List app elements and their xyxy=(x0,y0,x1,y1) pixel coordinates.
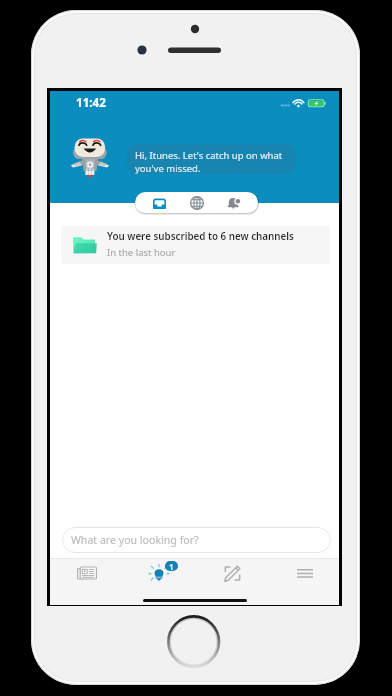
button[interactable]: You were subscribed to 6 new channels xyxy=(61,226,330,264)
button[interactable]: Inbox xyxy=(146,192,173,213)
staticText: What are you looking for? xyxy=(71,533,199,547)
button[interactable]: Menu xyxy=(285,553,325,593)
button[interactable]: Compose xyxy=(212,553,252,593)
staticText: Hi, Itunes. Let's catch up on what you'v… xyxy=(135,149,290,174)
button[interactable]: News xyxy=(67,553,107,593)
staticText: In the last hour xyxy=(107,246,176,259)
staticText: 11:42 xyxy=(76,95,106,111)
button[interactable]: Notifications xyxy=(220,192,247,213)
button[interactable]: Hi, Itunes. Let's catch up on what you'v… xyxy=(127,144,296,174)
button[interactable]: Ideas xyxy=(139,553,179,593)
staticText: 1 xyxy=(169,561,174,571)
staticText: You were subscribed to 6 new channels xyxy=(107,230,294,243)
button[interactable]: What are you looking for? xyxy=(62,527,331,553)
button[interactable]: Discover xyxy=(183,192,210,213)
